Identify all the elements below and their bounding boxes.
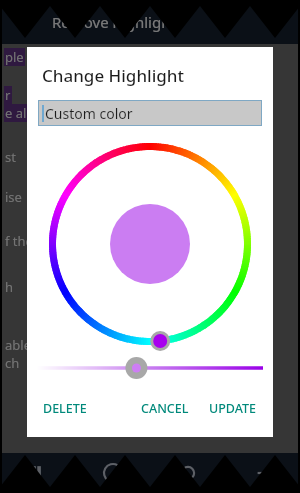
button[interactable]: DELETE [39,394,91,423]
staticText: st [5,148,16,166]
staticText: r [5,86,11,104]
staticText: h [5,278,14,296]
staticText: ch [5,354,20,372]
staticText: Remove highlight [52,12,176,32]
button[interactable]: Brightness [27,350,273,386]
staticText: Change Highlight [42,64,184,87]
button[interactable]: CANCEL [137,394,193,423]
button[interactable]: Library [0,453,75,493]
button[interactable]: Hue wheel [27,138,273,350]
button[interactable]: Night [150,453,225,493]
staticText: ise [5,188,22,206]
staticText: CANCEL [141,400,189,417]
staticText: ple [5,48,24,66]
button[interactable]: UPDATE [205,394,261,423]
staticText: Custom color [45,104,133,123]
staticText: UPDATE [209,400,257,417]
button[interactable]: Rotate [75,453,150,493]
button[interactable]: Back [8,5,42,39]
staticText: DELETE [43,400,87,417]
staticText: able [5,336,31,354]
staticText: f the [5,232,33,250]
staticText: e al [5,104,27,122]
button[interactable]: Custom color [39,101,261,125]
button[interactable]: More [225,453,300,493]
